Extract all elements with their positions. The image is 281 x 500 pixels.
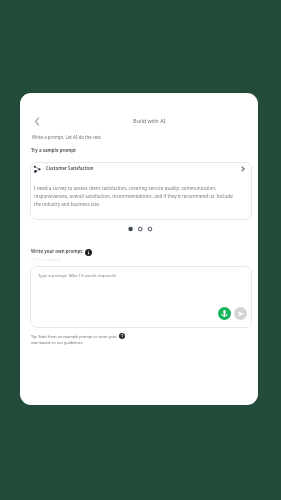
staticText: Build with AI xyxy=(133,117,166,124)
button[interactable]: Back xyxy=(27,111,47,131)
staticText: Write your own prompt: xyxy=(31,248,84,254)
staticText: I need a survey to assess client satisfa… xyxy=(34,185,234,207)
button[interactable]: Type a prompt. (Min 10 words required) xyxy=(30,266,252,328)
button[interactable]: Customer Satisfaction xyxy=(30,162,252,220)
staticText: Tip: Start from an example prompt or wri… xyxy=(31,334,117,345)
button[interactable]: Help xyxy=(119,333,125,339)
staticText: Write a prompt. Let AI do the rest. xyxy=(32,134,103,140)
staticText: (1000 remaining) xyxy=(31,257,62,262)
staticText: Type a prompt. (Min 10 words required) xyxy=(38,273,116,279)
button[interactable]: Info xyxy=(85,249,92,256)
button[interactable]: Send xyxy=(234,307,247,320)
staticText: Customer Satisfaction xyxy=(46,165,94,171)
staticText: Try a sample prompt xyxy=(31,147,77,153)
button[interactable]: Voice input xyxy=(218,307,231,320)
